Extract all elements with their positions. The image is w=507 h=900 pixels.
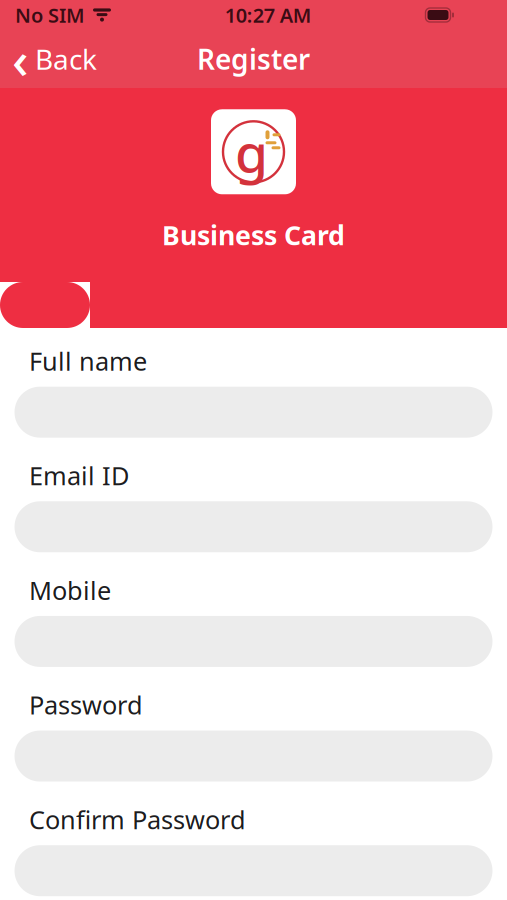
staticText: g (235, 116, 268, 187)
staticText: ‹ (12, 25, 29, 93)
button[interactable]: Password (14, 731, 492, 782)
staticText: Back (35, 40, 97, 78)
staticText: 10:27 AM (225, 2, 312, 28)
staticText: Email ID (29, 459, 129, 492)
staticText: No SIM (15, 2, 85, 28)
staticText: Business Card (162, 217, 345, 253)
staticText: Full name (29, 344, 147, 378)
staticText: Mobile (29, 573, 111, 607)
staticText: Password (29, 688, 143, 721)
staticText: Confirm Password (29, 803, 246, 836)
staticText: Register (197, 40, 310, 78)
button[interactable]: ‹ (0, 31, 111, 87)
